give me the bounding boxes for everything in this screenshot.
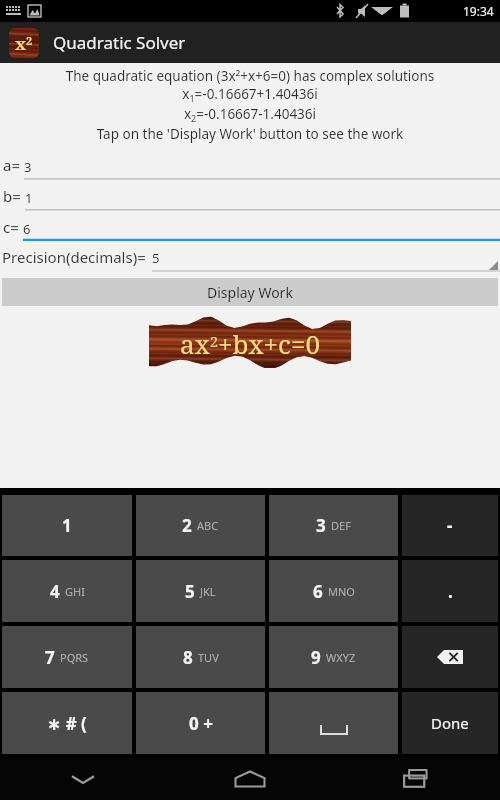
staticText: ABC (197, 518, 219, 533)
staticText: The quadratic equation (3x²+x+6=0) has c… (0, 67, 500, 85)
staticText: DEF (331, 518, 351, 533)
button[interactable]: App icon (9, 28, 39, 58)
staticText: MNO (328, 584, 355, 599)
button[interactable]: Done (402, 692, 498, 754)
staticText: WXYZ (326, 650, 356, 665)
staticText: 1 (25, 189, 33, 207)
staticText: 3 (316, 514, 326, 537)
button[interactable]: 2 ABC (136, 495, 265, 556)
button[interactable]: Delete (402, 626, 498, 688)
staticText: 8 (183, 646, 193, 669)
button[interactable]: Home (166, 758, 333, 800)
staticText: 7 (45, 646, 55, 669)
staticText: Quadratic Solver (53, 31, 186, 54)
staticText: 2 (182, 514, 192, 537)
staticText: 19:34 (463, 3, 494, 19)
staticText: b= (3, 186, 21, 206)
button[interactable]: 6 MNO (269, 560, 398, 622)
button[interactable]: c= (0, 211, 500, 242)
button[interactable]: ∗ # ( (2, 692, 132, 754)
staticText: Precision(decimals)= (2, 247, 146, 267)
button[interactable]: 8 TUV (136, 626, 265, 688)
staticText: JKL (200, 584, 216, 599)
staticText: 3 (24, 158, 32, 176)
button[interactable]: . (402, 560, 498, 622)
staticText: Tap on the 'Display Work' button to see … (0, 125, 500, 143)
button[interactable]: Space (269, 692, 398, 754)
staticText: c= (3, 217, 19, 237)
staticText: ax2+bx+c=0 (180, 326, 320, 361)
staticText: TUV (198, 650, 219, 665)
staticText: 6 (23, 220, 31, 238)
button[interactable]: 1 (2, 495, 132, 556)
button[interactable]: 9 WXYZ (269, 626, 398, 688)
button[interactable]: Display Work (2, 278, 498, 306)
button[interactable]: Recent apps (333, 758, 500, 800)
button[interactable]: 0 + (136, 692, 265, 754)
staticText: 6 (313, 580, 323, 603)
staticText: 9 (311, 646, 321, 669)
staticText: PQRS (60, 650, 89, 665)
staticText: x1=-0.16667+1.40436i (0, 85, 500, 105)
button[interactable]: 4 GHI (2, 560, 132, 622)
staticText: x2 (15, 32, 33, 55)
button[interactable]: b= (0, 180, 500, 211)
button[interactable]: 5 JKL (136, 560, 265, 622)
staticText: 1 (62, 514, 72, 537)
staticText: 4 (50, 580, 60, 603)
staticText: x2=-0.16667-1.40436i (0, 105, 500, 125)
button[interactable]: Hide keyboard (0, 758, 166, 800)
button[interactable]: Precision(decimals)= (0, 242, 500, 272)
button[interactable]: - (402, 495, 498, 556)
staticText: GHI (65, 584, 85, 599)
button[interactable]: a= (0, 149, 500, 180)
button[interactable]: 3 DEF (269, 495, 398, 556)
staticText: . (448, 580, 453, 603)
staticText: 0 + (189, 712, 213, 735)
button[interactable]: 7 PQRS (2, 626, 132, 688)
staticText: 5 (185, 580, 195, 603)
staticText: ∗ # ( (47, 712, 87, 735)
staticText: - (447, 514, 453, 537)
staticText: Display Work (207, 283, 293, 302)
staticText: 5 (152, 249, 160, 267)
staticText: Done (431, 713, 469, 733)
staticText: a= (3, 155, 20, 175)
